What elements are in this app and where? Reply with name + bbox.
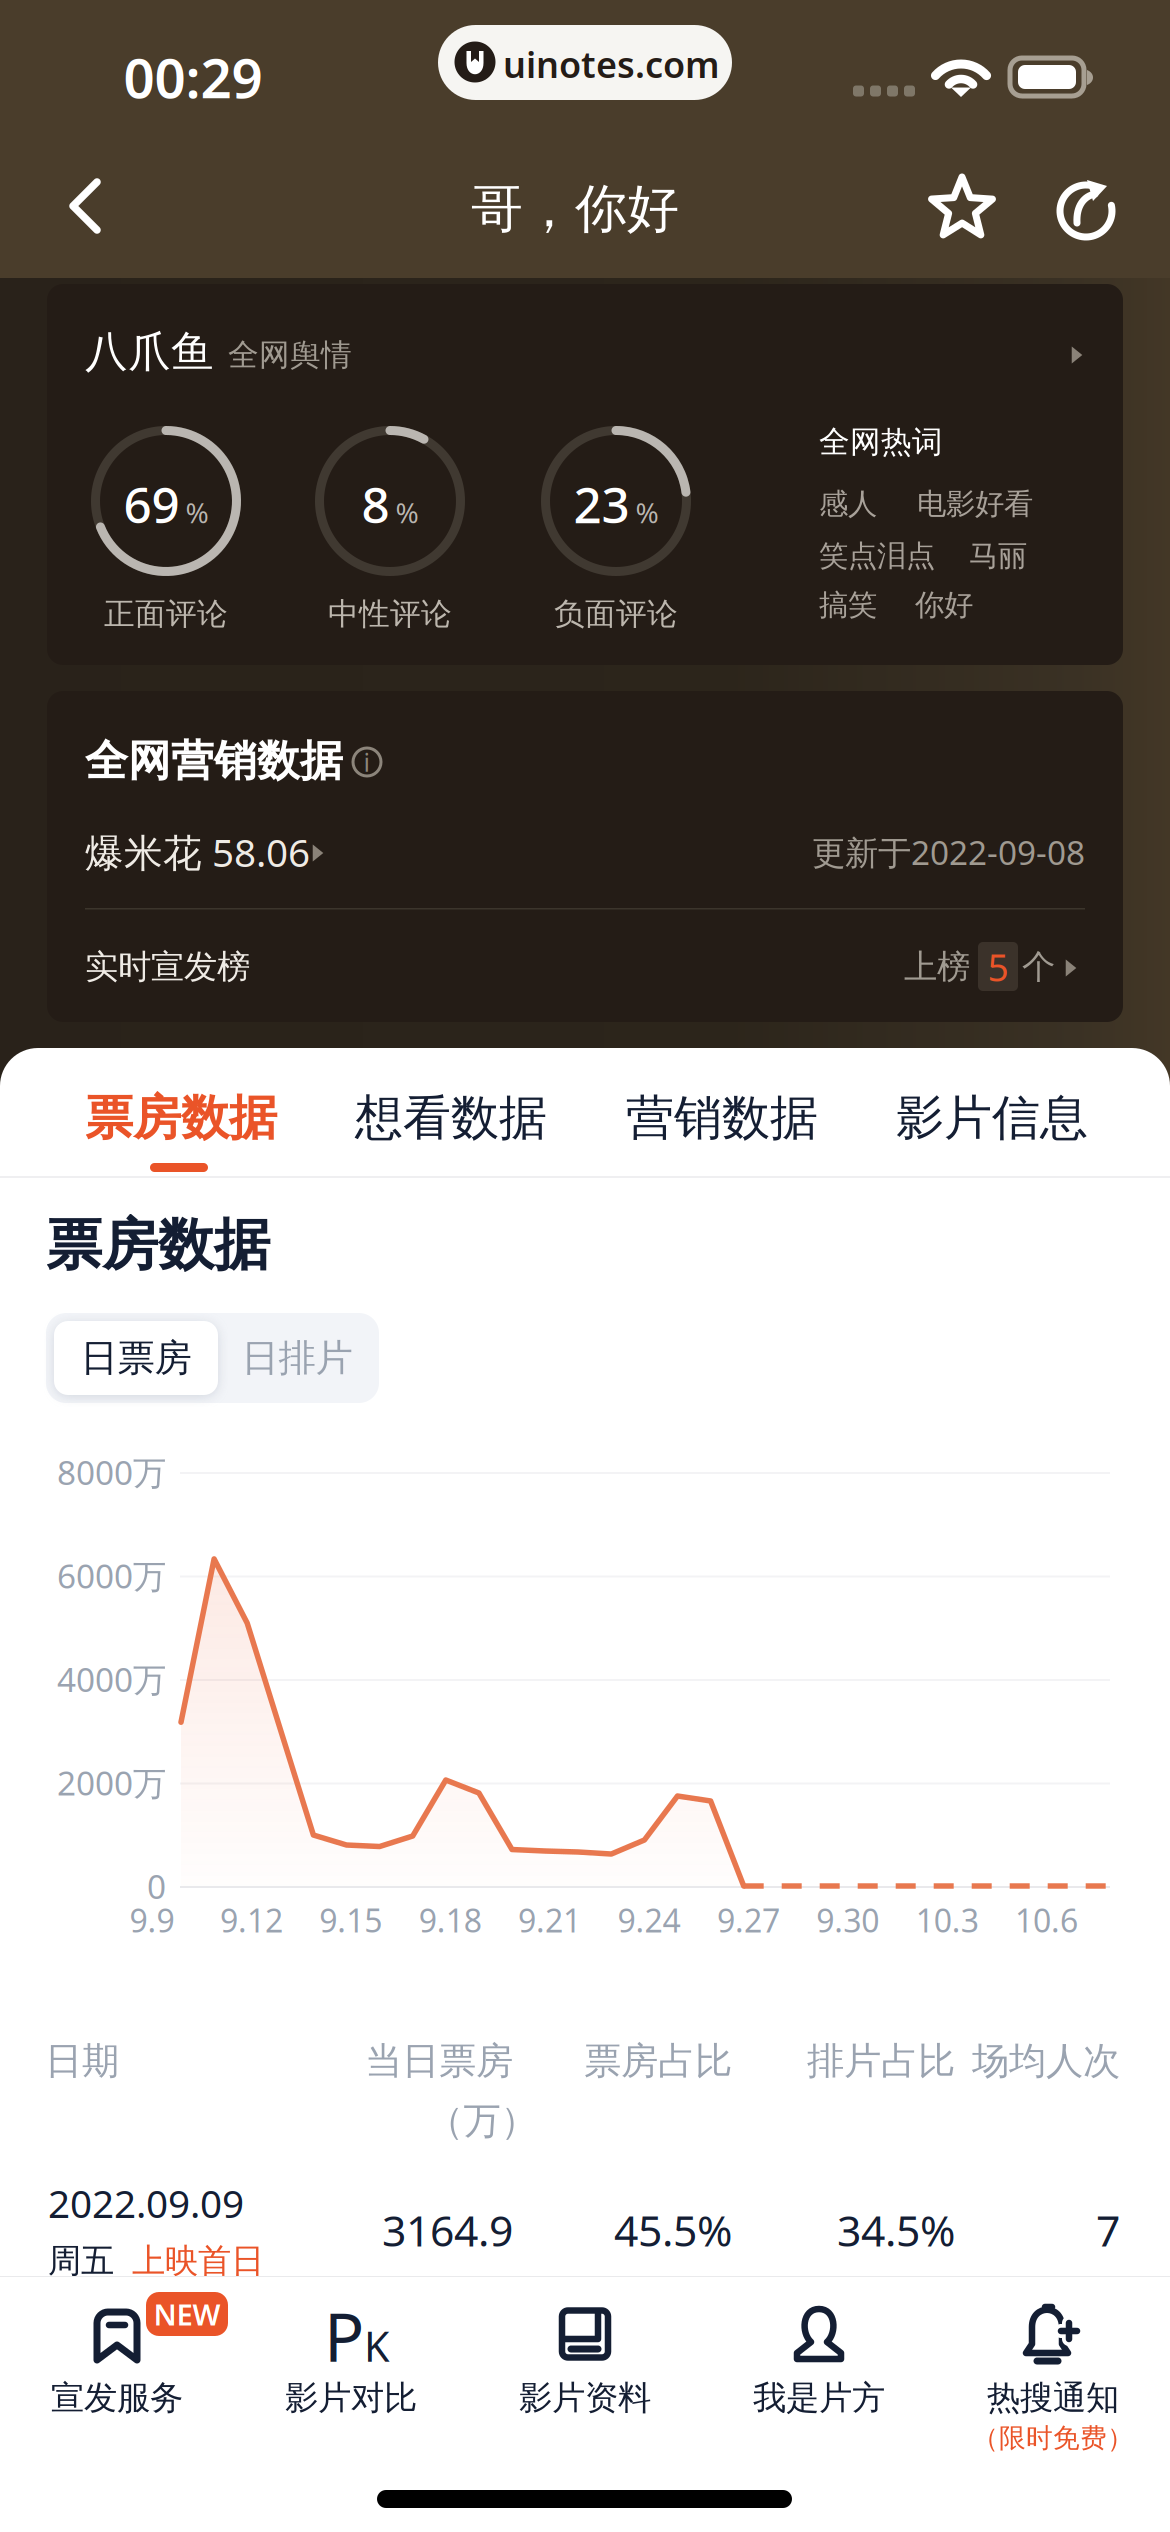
button[interactable] [0, 2166, 1170, 2286]
button[interactable]: 营销数据 [607, 1058, 837, 1178]
staticText: NEW [153, 2294, 220, 2333]
staticText: 营销数据 [626, 1088, 818, 1147]
button[interactable]: 票房数据 [66, 1058, 296, 1178]
staticText: 想看数据 [355, 1088, 547, 1147]
staticText: 2000万 [57, 1760, 166, 1805]
staticText: 上榜 [904, 946, 970, 987]
staticText: 10.6 [1015, 1899, 1078, 1941]
staticText: 4000万 [57, 1657, 166, 1701]
staticText: 8 [361, 471, 389, 537]
staticText: 2022.09.09 [48, 2177, 244, 2229]
staticText: 实时宣发榜 [85, 946, 250, 987]
staticText: i [363, 745, 370, 779]
staticText: K [364, 2318, 390, 2373]
staticText: 宣发服务 [51, 2377, 183, 2418]
staticText: 更新于2022-09-08 [812, 830, 1085, 874]
staticText: 9.18 [419, 1899, 482, 1941]
staticText: 全网舆情 [228, 336, 352, 374]
staticText: 票房数据 [46, 1211, 270, 1279]
staticText: % [395, 494, 418, 531]
staticText: 69 [123, 471, 179, 537]
staticText: 23 [573, 471, 629, 537]
button[interactable]: 我是片方 [702, 2277, 936, 2527]
button[interactable]: 热搜通知 [936, 2277, 1170, 2527]
staticText: 9.15 [319, 1899, 382, 1941]
staticText: 八爪鱼 [85, 326, 214, 378]
staticText: 5 [987, 942, 1008, 992]
button[interactable] [85, 923, 1085, 1003]
staticText: 当日票房 [365, 2038, 513, 2084]
staticText: 8000万 [57, 1450, 166, 1494]
button[interactable]: Share [1038, 161, 1134, 257]
staticText: 影片对比 [285, 2377, 417, 2418]
staticText: 45.5% [614, 2202, 732, 2258]
staticText: 电影好看 [917, 486, 1033, 522]
staticText: 9.30 [816, 1899, 879, 1941]
staticText: 搞笑 [819, 587, 877, 623]
staticText: 感人 [819, 486, 877, 522]
button[interactable]: 想看数据 [336, 1058, 566, 1178]
staticText: 影片资料 [519, 2377, 651, 2418]
staticText: 我是片方 [753, 2377, 885, 2418]
staticText: 34.5% [837, 2202, 955, 2258]
staticText: 7 [1096, 2202, 1120, 2258]
staticText: （万） [426, 2098, 537, 2144]
staticText: 影片信息 [896, 1088, 1088, 1147]
staticText: 排片占比 [807, 2038, 955, 2084]
staticText: 9.12 [220, 1899, 283, 1941]
staticText: 中性评论 [328, 595, 452, 633]
staticText: 你好 [915, 587, 973, 623]
button[interactable]: 影片对比 [234, 2277, 468, 2527]
button[interactable]: 影片信息 [877, 1058, 1107, 1178]
button[interactable]: Favourite [914, 159, 1010, 255]
staticText: 日票房 [80, 1335, 191, 1381]
staticText: 3164.9 [382, 2202, 513, 2258]
staticText: 6000万 [57, 1553, 166, 1598]
button[interactable] [85, 815, 1085, 889]
staticText: 9.21 [518, 1899, 581, 1941]
button[interactable]: 影片资料 [468, 2277, 702, 2527]
staticText: % [185, 494, 208, 531]
staticText: 上映首日 [132, 2240, 264, 2281]
staticText: 10.3 [916, 1899, 979, 1941]
staticText: 票房数据 [85, 1088, 277, 1147]
button[interactable]: 宣发服务 [0, 2277, 234, 2527]
staticText: 马丽 [969, 538, 1027, 574]
staticText: 个 [1022, 946, 1055, 987]
staticText: 0 [147, 1864, 166, 1908]
button[interactable]: Back [37, 159, 133, 255]
staticText: 9.24 [617, 1899, 680, 1941]
staticText: 正面评论 [104, 595, 228, 633]
staticText: 哥，你好 [471, 177, 679, 241]
button[interactable]: 日排片 [217, 1321, 377, 1395]
staticText: 热搜通知 [987, 2377, 1119, 2418]
staticText: 负面评论 [554, 595, 678, 633]
staticText: 笑点泪点 [819, 538, 935, 574]
staticText: 场均人次 [972, 2038, 1120, 2084]
button[interactable]: 日票房 [54, 1321, 218, 1395]
staticText: P [324, 2292, 364, 2380]
staticText: 9.9 [129, 1899, 174, 1941]
staticText: （限时免费） [972, 2422, 1134, 2454]
staticText: 全网热词 [819, 423, 943, 461]
button[interactable] [0, 0, 1170, 2532]
staticText: % [635, 494, 658, 531]
staticText: 全网营销数据 [85, 735, 343, 787]
staticText: 票房占比 [584, 2038, 732, 2084]
staticText: 爆米花 58.06 [85, 826, 310, 878]
staticText: 00:29 [123, 41, 262, 113]
staticText: uinotes.com [503, 40, 720, 88]
staticText: 周五 [48, 2240, 114, 2281]
staticText: 9.27 [717, 1899, 780, 1941]
staticText: 日期 [45, 2038, 119, 2084]
staticText: 日排片 [241, 1335, 352, 1381]
